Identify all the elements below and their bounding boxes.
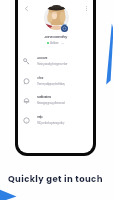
staticText: Privacy, security, change number	[37, 62, 68, 66]
button[interactable]: Account	[23, 53, 90, 68]
staticText: Account	[37, 56, 47, 60]
button[interactable]: Back	[23, 5, 30, 12]
staticText: Help	[37, 115, 43, 119]
staticText: Quickly get in touch	[8, 173, 103, 185]
staticText: Chat	[37, 76, 43, 80]
staticText: FAQ, contact us, privacy policy	[37, 121, 64, 125]
staticText: Messages, group, other sound	[37, 101, 65, 105]
staticText: Notifications	[37, 95, 51, 99]
button[interactable]: More options	[83, 5, 90, 12]
staticText: Jane Dorothy	[44, 34, 67, 40]
staticText: Theme, wallpaper, chat history	[37, 82, 65, 86]
button[interactable]: Notifications	[23, 92, 90, 107]
button[interactable]: Chat	[23, 73, 90, 88]
staticText: Active	[50, 41, 59, 45]
button[interactable]: Help	[23, 112, 90, 127]
